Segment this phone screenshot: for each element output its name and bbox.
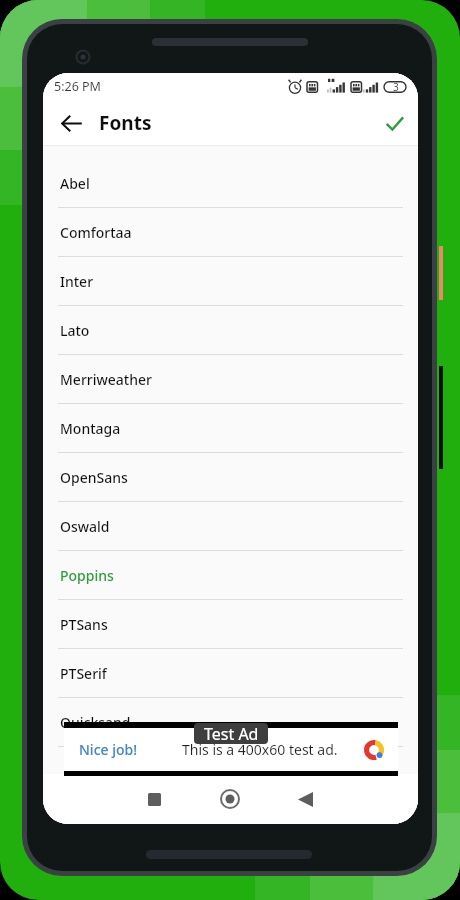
- button[interactable]: OpenSans: [43, 453, 418, 502]
- staticText: Merriweather: [60, 370, 152, 389]
- button[interactable]: Back: [274, 774, 336, 824]
- button[interactable]: Merriweather: [43, 355, 418, 404]
- staticText: Quicksand: [60, 713, 131, 732]
- button[interactable]: Abel: [43, 159, 418, 208]
- button[interactable]: Apply: [370, 100, 418, 146]
- button[interactable]: Oswald: [43, 502, 418, 551]
- staticText: Abel: [60, 174, 90, 193]
- staticText: Oswald: [60, 517, 110, 536]
- button[interactable]: Montaga: [43, 404, 418, 453]
- staticText: Poppins: [60, 566, 114, 585]
- staticText: 5:26 PM: [54, 78, 101, 95]
- staticText: Nice job!: [79, 740, 138, 759]
- button[interactable]: Home: [199, 774, 261, 824]
- button[interactable]: Poppins: [43, 551, 418, 600]
- button[interactable]: Comfortaa: [43, 208, 418, 257]
- button[interactable]: PTSans: [43, 600, 418, 649]
- button[interactable]: Inter: [43, 257, 418, 306]
- staticText: Comfortaa: [60, 223, 132, 242]
- staticText: Montaga: [60, 419, 121, 438]
- staticText: PTSans: [60, 615, 108, 634]
- staticText: Inter: [60, 272, 94, 291]
- button[interactable]: Nice job!: [64, 722, 398, 776]
- staticText: PTSerif: [60, 664, 107, 683]
- staticText: Test Ad: [204, 723, 259, 744]
- button[interactable]: Quicksand: [43, 698, 418, 747]
- staticText: Fonts: [99, 110, 152, 136]
- button[interactable]: Recents: [123, 774, 185, 824]
- staticText: Lato: [60, 321, 90, 340]
- staticText: This is a 400x60 test ad.: [182, 740, 338, 759]
- button[interactable]: Lato: [43, 306, 418, 355]
- button[interactable]: Back: [43, 100, 99, 146]
- button[interactable]: PTSerif: [43, 649, 418, 698]
- staticText: OpenSans: [60, 468, 128, 487]
- staticText: 3: [393, 80, 399, 94]
